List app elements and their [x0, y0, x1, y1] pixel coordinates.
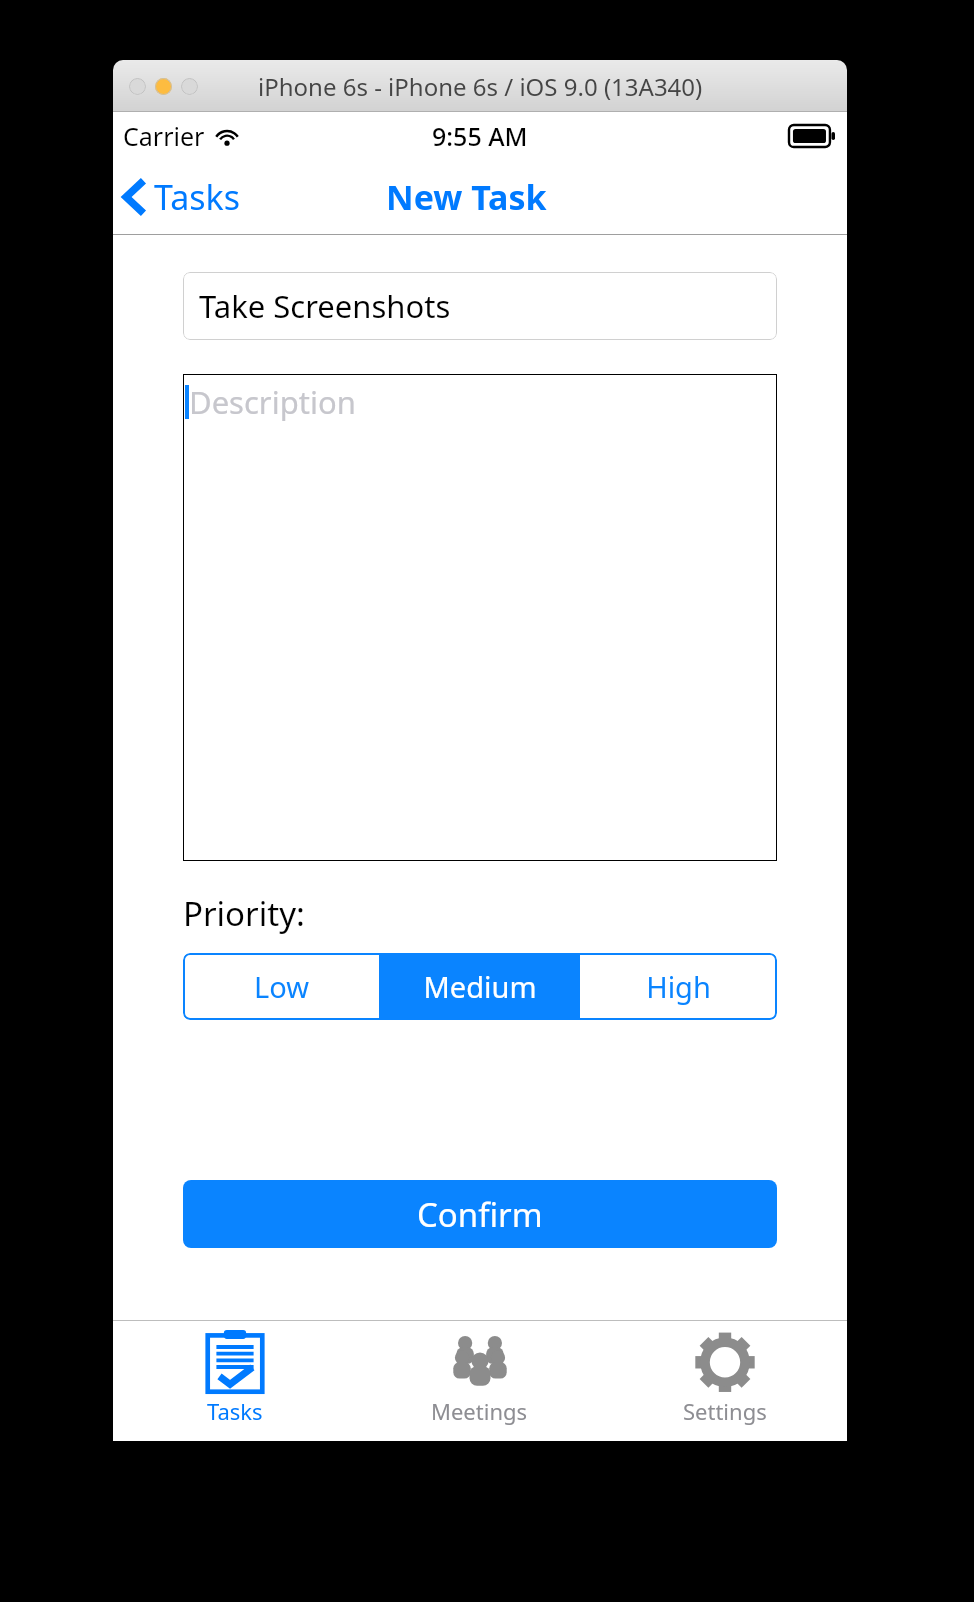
- button[interactable]: Tasks: [113, 1321, 357, 1441]
- staticText: Take Screenshots: [199, 285, 451, 327]
- other: Tasks: [204, 1329, 266, 1393]
- button[interactable]: Medium: [381, 953, 578, 1020]
- staticText: Confirm: [417, 1192, 543, 1237]
- button[interactable]: Meetings: [357, 1321, 602, 1441]
- button[interactable]: Settings: [602, 1321, 847, 1441]
- staticText: Priority:: [183, 891, 305, 936]
- staticText: Tasks: [154, 174, 240, 220]
- staticText: Settings: [683, 1396, 767, 1426]
- other: Settings: [694, 1329, 756, 1393]
- button[interactable]: Description: [183, 374, 777, 861]
- button[interactable]: Confirm: [183, 1180, 777, 1248]
- staticText: Low: [254, 967, 309, 1006]
- staticText: Meetings: [431, 1396, 528, 1426]
- other: Back: [123, 178, 145, 216]
- staticText: iPhone 6s - iPhone 6s / iOS 9.0 (13A340): [258, 70, 703, 103]
- button[interactable]: Take Screenshots: [183, 272, 777, 340]
- staticText: Tasks: [207, 1396, 263, 1426]
- staticText: 9:55 AM: [432, 119, 528, 153]
- other: Meetings: [449, 1329, 511, 1393]
- button[interactable]: [181, 78, 198, 95]
- staticText: New Task: [386, 174, 547, 220]
- staticText: Carrier: [123, 119, 205, 153]
- staticText: Description: [189, 381, 356, 423]
- staticText: High: [646, 967, 711, 1006]
- button[interactable]: [129, 78, 146, 95]
- button[interactable]: [155, 78, 172, 95]
- button[interactable]: High: [580, 953, 777, 1020]
- staticText: Medium: [423, 967, 537, 1006]
- button[interactable]: Low: [183, 953, 379, 1020]
- button[interactable]: Back: [123, 174, 240, 220]
